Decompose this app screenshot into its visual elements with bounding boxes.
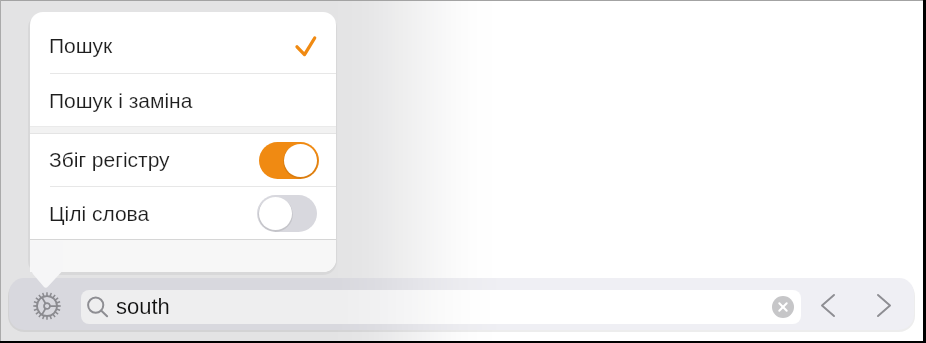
staticText: Пошук і заміна	[49, 89, 193, 112]
button[interactable]: Clear search	[772, 296, 794, 318]
button[interactable]: Find options	[33, 292, 61, 320]
button[interactable]: Enabled	[259, 142, 319, 179]
staticText: Збіг регістру	[49, 148, 170, 171]
staticText: Пошук	[49, 34, 113, 57]
button[interactable]: Цілі слова	[30, 187, 336, 239]
button[interactable]: Previous match	[808, 290, 848, 321]
staticText: south	[116, 294, 170, 319]
button[interactable]: Disabled	[257, 195, 317, 232]
button[interactable]: Next match	[864, 290, 904, 321]
button[interactable]: Пошук і заміна	[30, 74, 336, 126]
button[interactable]: south	[81, 290, 801, 324]
button[interactable]: Збіг регістру	[30, 134, 336, 186]
staticText: Цілі слова	[49, 202, 150, 225]
button[interactable]: Пошук	[30, 12, 336, 73]
